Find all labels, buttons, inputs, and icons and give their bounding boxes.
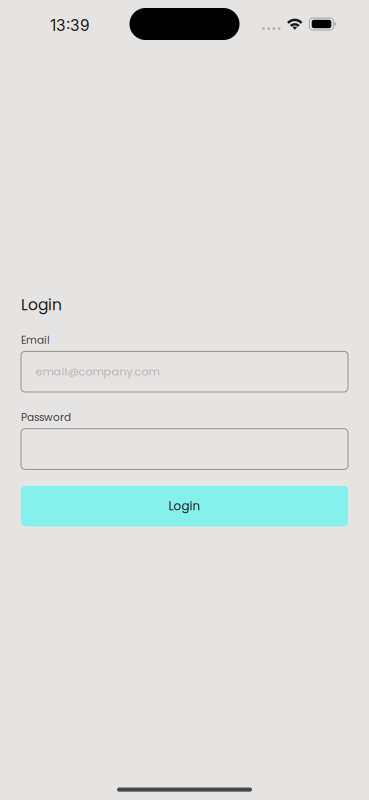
staticText: Login: [168, 498, 200, 514]
staticText: Email: [21, 333, 50, 347]
staticText: 13:39: [50, 16, 90, 35]
staticText: Login: [21, 294, 62, 316]
button[interactable]: Login: [21, 486, 348, 526]
staticText: email@company.com: [35, 364, 159, 379]
staticText: Password: [21, 410, 71, 425]
